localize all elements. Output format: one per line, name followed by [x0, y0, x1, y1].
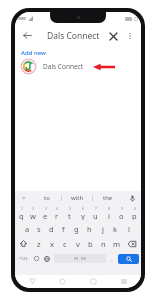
staticText: 3	[45, 207, 47, 211]
button[interactable]: c	[58, 237, 71, 250]
button[interactable]: 7	[89, 207, 102, 220]
staticText: y	[81, 211, 85, 220]
staticText: 5	[69, 207, 71, 211]
button[interactable]: More suggestions	[15, 191, 32, 205]
staticText: a	[25, 224, 30, 234]
staticText: d	[49, 224, 54, 234]
button[interactable]: Dals Connect	[15, 59, 141, 74]
button[interactable]: h	[83, 222, 96, 235]
staticText: q	[19, 211, 24, 220]
button[interactable]: Search	[118, 254, 139, 264]
staticText: u	[93, 211, 98, 220]
staticText: b	[88, 239, 93, 249]
button[interactable]: j	[96, 222, 109, 235]
button[interactable]: Close	[106, 29, 120, 43]
staticText: to	[44, 194, 50, 202]
button[interactable]: g	[70, 222, 83, 235]
button[interactable]: 4	[51, 207, 63, 220]
button[interactable]: Emoji	[31, 252, 41, 265]
staticText: s	[37, 224, 41, 234]
button[interactable]: Backspace	[123, 237, 141, 250]
button[interactable]: Back	[20, 28, 35, 43]
staticText: v	[76, 239, 80, 249]
staticText: w	[30, 211, 36, 220]
button[interactable]: Change language	[41, 252, 53, 265]
staticText: z	[37, 239, 41, 249]
button[interactable]: Keyboard	[118, 276, 129, 287]
staticText: Add new	[21, 49, 46, 57]
staticText: m	[113, 239, 121, 249]
button[interactable]: FR · EN	[54, 254, 106, 263]
staticText: t	[68, 211, 71, 220]
staticText: p	[132, 211, 137, 220]
button[interactable]: 1	[15, 207, 27, 220]
button[interactable]: 8	[102, 207, 115, 220]
button[interactable]: n	[97, 237, 110, 250]
button[interactable]: f	[57, 222, 70, 235]
button[interactable]: 5	[63, 207, 76, 220]
staticText: h	[87, 224, 92, 234]
staticText: Dals Connect	[47, 30, 100, 42]
button[interactable]: ?123	[16, 252, 31, 265]
button[interactable]: b	[84, 237, 97, 250]
staticText: g	[74, 224, 79, 234]
button[interactable]: the	[93, 191, 123, 205]
staticText: 4	[56, 207, 58, 211]
staticText: .	[111, 255, 113, 263]
staticText: 7	[95, 207, 97, 211]
button[interactable]: 0	[128, 207, 141, 220]
button[interactable]: Home	[57, 276, 68, 287]
button[interactable]: s	[33, 222, 45, 235]
staticText: n	[101, 239, 106, 249]
staticText: 8	[108, 207, 110, 211]
staticText: with	[71, 194, 84, 202]
button[interactable]: x	[45, 237, 58, 250]
button[interactable]: a	[21, 222, 33, 235]
staticText: c	[63, 239, 67, 249]
button[interactable]: l	[122, 222, 135, 235]
staticText: e	[43, 211, 48, 220]
staticText: k	[113, 224, 118, 234]
button[interactable]: v	[71, 237, 84, 250]
staticText: o	[119, 211, 124, 220]
staticText: r	[55, 211, 59, 220]
staticText: f	[62, 224, 65, 234]
staticText: i	[108, 211, 110, 220]
staticText: Dals Connect	[43, 62, 84, 71]
button[interactable]: Recents	[88, 276, 99, 287]
staticText: the	[103, 194, 113, 202]
staticText: 2	[32, 207, 34, 211]
staticText: 1	[21, 207, 23, 211]
button[interactable]: 6	[76, 207, 89, 220]
button[interactable]: More options	[124, 30, 136, 42]
button[interactable]: Voice input	[123, 191, 141, 205]
button[interactable]: Add new	[15, 46, 141, 59]
button[interactable]: Back	[27, 276, 38, 287]
button[interactable]: Shift	[15, 237, 32, 250]
staticText: l	[128, 224, 130, 234]
button[interactable]: z	[32, 237, 45, 250]
button[interactable]: with	[62, 191, 92, 205]
staticText: x	[50, 239, 54, 249]
button[interactable]: k	[109, 222, 122, 235]
button[interactable]: 2	[27, 207, 39, 220]
staticText: ?123	[19, 256, 28, 261]
button[interactable]: 3	[39, 207, 51, 220]
button[interactable]: 9	[115, 207, 128, 220]
staticText: j	[102, 224, 104, 234]
button[interactable]: d	[45, 222, 57, 235]
button[interactable]: m	[110, 237, 123, 250]
staticText: >	[22, 194, 26, 202]
button[interactable]: .	[107, 252, 117, 265]
staticText: 6	[82, 207, 84, 211]
staticText: FR · EN	[74, 256, 86, 261]
staticText: 9	[121, 207, 123, 211]
staticText: 0	[134, 207, 136, 211]
button[interactable]: to	[32, 191, 61, 205]
